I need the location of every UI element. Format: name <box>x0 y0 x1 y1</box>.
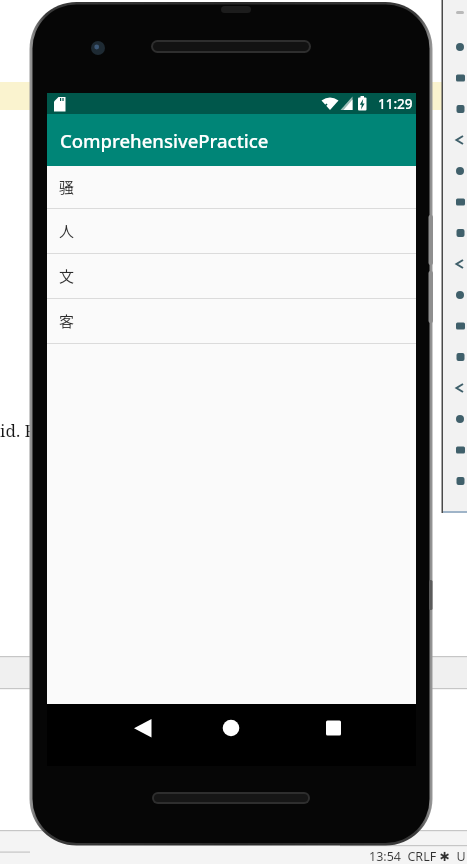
staticText: id. F <box>0 419 35 442</box>
staticText: 客 <box>59 310 75 332</box>
staticText: 13:54 CRLF ✱ U <box>369 848 466 864</box>
button[interactable]: 文 <box>47 254 416 298</box>
button[interactable]: 人 <box>47 209 416 253</box>
button[interactable] <box>213 710 249 746</box>
staticText: 骚 <box>59 176 75 198</box>
button[interactable] <box>125 710 161 746</box>
staticText: 11:29 <box>378 95 413 113</box>
button[interactable]: 骚 <box>47 166 416 208</box>
button[interactable]: 客 <box>47 299 416 343</box>
staticText: ComprehensivePractice <box>60 128 269 153</box>
staticText: 人 <box>59 220 75 242</box>
staticText: 文 <box>59 265 75 287</box>
button[interactable] <box>316 710 352 746</box>
